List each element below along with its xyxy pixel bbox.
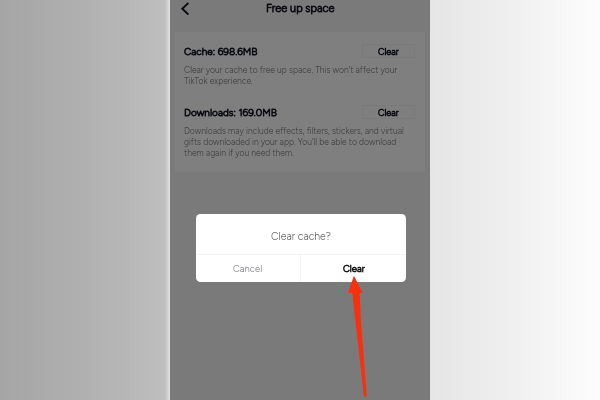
staticText: Downloads: 169.0MB [184,106,277,118]
staticText: Clear [378,46,399,57]
staticText: Clear cache? [271,230,332,243]
button[interactable]: Clear [362,105,415,119]
staticText: Clear [343,263,365,274]
button[interactable]: Clear [362,44,415,58]
staticText: Cancel [233,263,263,274]
button[interactable]: Clear [301,255,406,282]
staticText: Downloads: 169.0MB [184,106,277,118]
button[interactable]: Back [175,0,195,18]
staticText: Clear [378,107,399,118]
staticText: Free up space [266,2,335,15]
button[interactable]: Cancel [196,255,300,282]
staticText: Clear [378,107,399,118]
staticText: Cache: 698.6MB [184,45,258,57]
staticText: Clear [378,46,399,57]
staticText: Downloads may include effects, filters, … [184,126,412,158]
staticText: Free up space [266,2,335,15]
staticText: Clear [343,263,365,274]
staticText: Clear your cache to free up space. This … [184,65,412,86]
staticText: Cache: 698.6MB [184,45,258,57]
